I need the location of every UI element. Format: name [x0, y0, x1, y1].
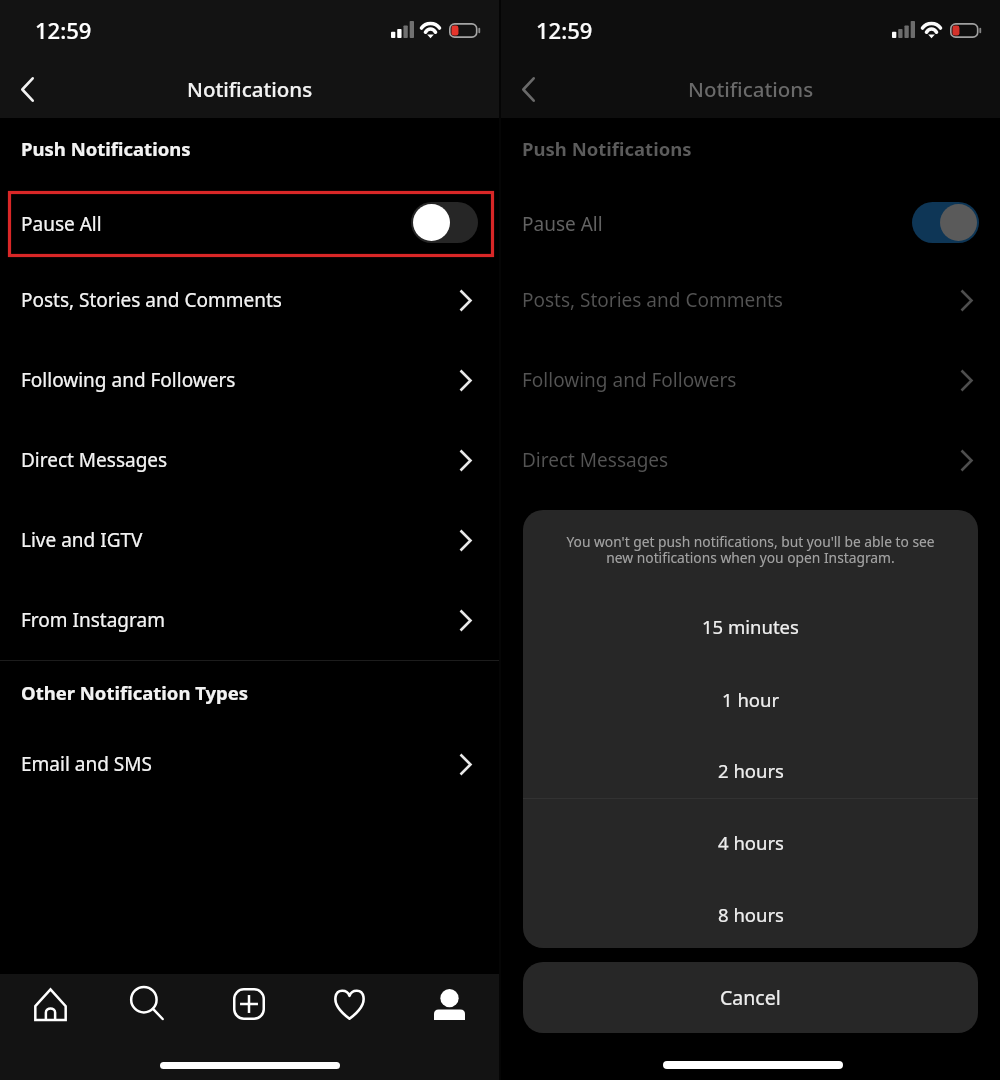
staticText: Cancel: [720, 984, 781, 1011]
staticText: 2 hours: [718, 758, 784, 783]
button[interactable]: Home: [22, 976, 78, 1032]
button[interactable]: 2 hours: [523, 734, 978, 806]
button[interactable]: Search: [119, 975, 175, 1031]
staticText: Following and Followers: [522, 367, 737, 393]
button[interactable]: Direct Messages: [0, 420, 499, 500]
button[interactable]: Cancel: [523, 962, 978, 1033]
staticText: Push Notifications: [21, 136, 191, 161]
staticText: Posts, Stories and Comments: [522, 287, 783, 313]
staticText: You won't get push notifications, but yo…: [566, 532, 935, 567]
button[interactable]: 8 hours: [523, 878, 978, 948]
button[interactable]: Direct Messages: [501, 420, 1000, 500]
button[interactable]: Pause All on: [912, 202, 979, 243]
staticText: 4 hours: [718, 830, 784, 855]
staticText: Posts, Stories and Comments: [21, 287, 282, 313]
button[interactable]: Following and Followers: [501, 340, 1000, 420]
staticText: Live and IGTV: [21, 527, 143, 553]
button[interactable]: Profile: [421, 976, 477, 1032]
button[interactable]: Following and Followers: [0, 340, 499, 420]
button[interactable]: Posts, Stories and Comments: [501, 260, 1000, 340]
button[interactable]: Live and IGTV: [0, 500, 499, 580]
button[interactable]: Pause All: [0, 190, 499, 258]
button[interactable]: Back: [4, 66, 50, 112]
staticText: Following and Followers: [21, 367, 236, 393]
staticText: Pause All: [21, 211, 102, 237]
button[interactable]: Posts, Stories and Comments: [0, 260, 499, 340]
staticText: Other Notification Types: [21, 680, 249, 705]
button[interactable]: Back: [505, 66, 551, 112]
staticText: Pause All: [522, 211, 603, 237]
staticText: 8 hours: [718, 902, 784, 927]
staticText: From Instagram: [21, 607, 165, 633]
staticText: 12:59: [35, 15, 92, 45]
staticText: Email and SMS: [21, 751, 152, 777]
button[interactable]: Pause All: [501, 190, 1000, 258]
button[interactable]: 15 minutes: [523, 590, 978, 662]
button[interactable]: From Instagram: [0, 580, 499, 660]
staticText: 1 hour: [722, 687, 780, 712]
staticText: Notifications: [688, 75, 814, 103]
button[interactable]: 1 hour: [523, 663, 978, 735]
staticText: 12:59: [536, 15, 593, 45]
button[interactable]: 4 hours: [523, 806, 978, 878]
staticText: Notifications: [187, 75, 313, 103]
button[interactable]: Create: [221, 976, 277, 1032]
staticText: Push Notifications: [522, 136, 692, 161]
staticText: Direct Messages: [21, 447, 168, 473]
staticText: Direct Messages: [522, 447, 669, 473]
button[interactable]: Pause All off: [411, 202, 478, 243]
button[interactable]: Activity: [321, 976, 377, 1032]
staticText: 15 minutes: [702, 614, 799, 639]
button[interactable]: Email and SMS: [0, 724, 499, 804]
